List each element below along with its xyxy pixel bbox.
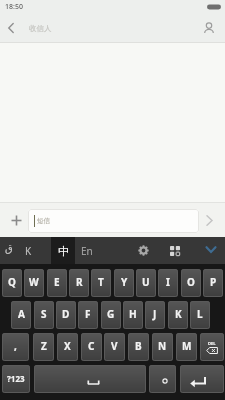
- button[interactable]: [205, 246, 217, 254]
- button[interactable]: O: [181, 269, 201, 297]
- button[interactable]: En: [81, 244, 93, 258]
- button[interactable]: 中: [51, 237, 75, 264]
- staticText: 18:50: [5, 2, 23, 12]
- staticText: 收信人: [29, 24, 52, 33]
- button[interactable]: 短信: [28, 209, 199, 233]
- staticText: F: [85, 307, 91, 321]
- staticText: ,: [14, 339, 17, 353]
- button[interactable]: S: [34, 301, 54, 329]
- staticText: Q: [8, 275, 16, 289]
- button[interactable]: D: [56, 301, 76, 329]
- button[interactable]: W: [24, 269, 44, 297]
- button[interactable]: Q: [2, 269, 22, 297]
- staticText: S: [41, 307, 47, 321]
- staticText: V: [111, 339, 118, 353]
- button[interactable]: T: [91, 269, 111, 297]
- button[interactable]: Y: [114, 269, 134, 297]
- button[interactable]: X: [57, 333, 78, 361]
- button[interactable]: [180, 365, 224, 393]
- button[interactable]: [34, 365, 146, 393]
- staticText: N: [158, 339, 167, 353]
- button[interactable]: [206, 215, 213, 226]
- button[interactable]: [149, 365, 176, 393]
- staticText: E: [54, 275, 60, 289]
- button[interactable]: [170, 246, 180, 256]
- button[interactable]: I: [158, 269, 178, 297]
- button[interactable]: A: [11, 301, 31, 329]
- staticText: R: [76, 275, 83, 289]
- staticText: K: [175, 307, 182, 321]
- staticText: D: [62, 307, 70, 321]
- button[interactable]: N: [152, 333, 173, 361]
- button[interactable]: K: [25, 244, 32, 258]
- button[interactable]: G: [101, 301, 121, 329]
- button[interactable]: P: [203, 269, 223, 297]
- button[interactable]: [138, 245, 149, 256]
- staticText: 中: [58, 244, 69, 258]
- button[interactable]: V: [104, 333, 125, 361]
- staticText: L: [197, 307, 203, 321]
- staticText: 短信: [37, 217, 50, 225]
- button[interactable]: [11, 215, 22, 226]
- button[interactable]: U: [136, 269, 156, 297]
- staticText: ?123: [7, 373, 25, 384]
- staticText: A: [18, 307, 25, 321]
- button[interactable]: H: [123, 301, 143, 329]
- button[interactable]: ?123: [2, 365, 30, 393]
- button[interactable]: F: [78, 301, 98, 329]
- button[interactable]: R: [69, 269, 89, 297]
- staticText: H: [129, 307, 137, 321]
- staticText: W: [29, 275, 39, 289]
- staticText: O: [187, 275, 195, 289]
- staticText: I: [166, 275, 170, 289]
- button[interactable]: M: [176, 333, 197, 361]
- staticText: X: [64, 339, 71, 353]
- button[interactable]: Z: [33, 333, 54, 361]
- staticText: P: [210, 275, 217, 289]
- staticText: M: [182, 339, 192, 353]
- button[interactable]: L: [190, 301, 210, 329]
- staticText: Y: [121, 275, 128, 289]
- button[interactable]: C: [81, 333, 102, 361]
- button[interactable]: K: [168, 301, 188, 329]
- button[interactable]: J: [145, 301, 165, 329]
- staticText: Z: [41, 339, 47, 353]
- staticText: C: [88, 339, 95, 353]
- staticText: DEL: [208, 341, 216, 346]
- button[interactable]: B: [128, 333, 149, 361]
- button[interactable]: E: [47, 269, 67, 297]
- button[interactable]: ق: [5, 243, 13, 255]
- button[interactable]: DEL: [200, 333, 224, 361]
- staticText: J: [153, 307, 157, 321]
- button[interactable]: 收信人: [0, 14, 225, 42]
- staticText: T: [98, 275, 104, 289]
- staticText: B: [135, 339, 142, 353]
- button[interactable]: ,: [2, 333, 29, 361]
- staticText: G: [107, 307, 115, 321]
- button[interactable]: [204, 22, 214, 33]
- staticText: U: [142, 275, 150, 289]
